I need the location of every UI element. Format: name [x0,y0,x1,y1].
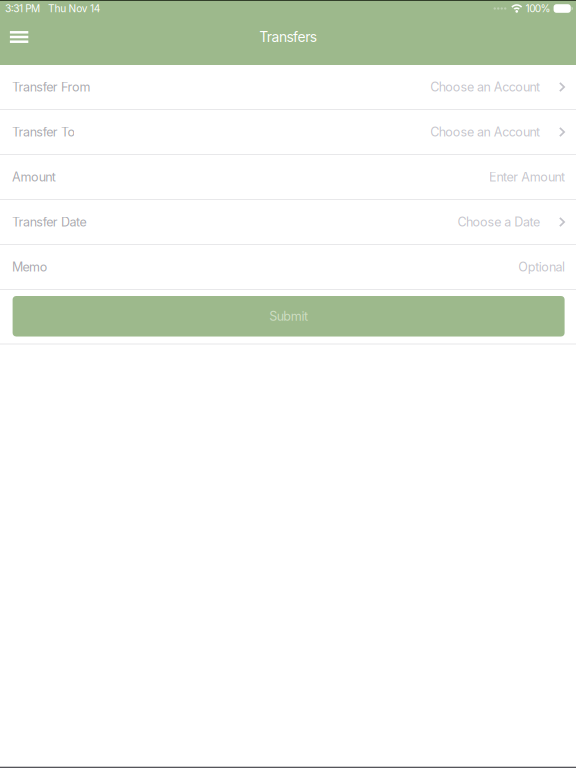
staticText: Choose an Account [430,79,540,95]
staticText: Enter Amount [489,169,565,185]
staticText: Memo [12,259,48,275]
staticText: Choose an Account [430,124,540,140]
staticText: Thu Nov 14 [48,2,101,15]
staticText: 100% [525,2,550,15]
button[interactable]: Amount [0,155,576,200]
button[interactable]: Transfer To [0,110,576,155]
staticText: Transfer Date [12,214,87,230]
staticText: 3:31 PM [5,2,40,15]
staticText: Transfer From [12,79,91,95]
staticText: Choose a Date [457,214,540,230]
staticText: Transfers [259,29,317,45]
staticText: Submit [269,309,308,324]
button[interactable]: Transfer From [0,65,576,110]
staticText: Transfer To [12,124,75,140]
staticText: Amount [12,169,56,185]
staticText: Optional [518,259,565,275]
button[interactable]: Menu [0,21,46,53]
button[interactable]: Submit [13,296,565,336]
button[interactable]: Transfer Date [0,200,576,245]
button[interactable]: Memo [0,245,576,290]
